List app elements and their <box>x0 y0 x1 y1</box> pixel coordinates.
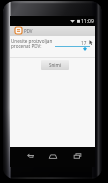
staticText: 17 <box>81 40 87 46</box>
staticText: PDV <box>24 28 33 34</box>
button[interactable]: Recents <box>69 147 85 165</box>
staticText: Snimi <box>49 62 62 68</box>
staticText: 11:09 <box>81 18 94 25</box>
button[interactable]: Back <box>22 147 38 165</box>
button[interactable]: Home <box>45 147 61 165</box>
staticText: Unesite proizvoljan procenat PDV: <box>11 38 53 50</box>
button[interactable]: Snimi <box>41 60 69 70</box>
